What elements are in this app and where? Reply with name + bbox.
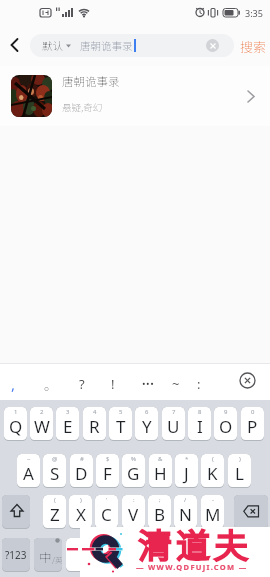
button[interactable]: 唐朝诡事录 — [0, 66, 270, 126]
staticText: $ — [106, 455, 110, 463]
staticText: S — [50, 462, 60, 485]
button[interactable]: ( — [43, 495, 66, 529]
button[interactable]: 。 — [44, 375, 58, 394]
button[interactable]: 8 — [188, 407, 211, 441]
button[interactable]: - — [201, 495, 224, 529]
staticText: @ — [52, 455, 58, 463]
button[interactable]: ! — [111, 375, 115, 393]
button[interactable]: ) — [228, 454, 251, 488]
staticText: 5 — [119, 408, 123, 416]
staticText: B — [154, 503, 166, 526]
staticText: % — [131, 455, 136, 463]
button[interactable]: & — [149, 454, 172, 488]
button[interactable]: 6 — [135, 407, 158, 441]
button[interactable]: 9 — [214, 407, 237, 441]
button[interactable]: 1 — [4, 407, 27, 441]
button[interactable] — [8, 38, 22, 52]
staticText: K — [207, 462, 218, 485]
button[interactable]: 3 — [56, 407, 79, 441]
button[interactable]: 默认 — [30, 34, 234, 57]
button[interactable]: $ — [96, 454, 119, 488]
staticText: 9 — [224, 408, 228, 416]
staticText: ) — [239, 455, 241, 463]
staticText: 3 — [66, 408, 70, 416]
staticText: 默认 — [42, 38, 63, 53]
button[interactable]: / — [174, 495, 197, 529]
button[interactable]: ~ — [172, 375, 180, 393]
button[interactable]: ' — [95, 495, 118, 529]
staticText: 唐朝诡事录 — [80, 38, 133, 53]
staticText: M — [205, 503, 221, 526]
staticText: P — [247, 415, 258, 438]
staticText: X — [76, 503, 86, 526]
staticText: V — [128, 503, 139, 526]
staticText: G — [127, 462, 140, 485]
staticText: Z — [50, 503, 60, 526]
staticText: 清道夫 — [136, 520, 250, 568]
staticText: ?123 — [5, 548, 27, 562]
button[interactable] — [206, 39, 219, 52]
staticText: : — [133, 496, 135, 504]
button[interactable]: ; — [148, 495, 171, 529]
button[interactable]: 5 — [109, 407, 132, 441]
staticText: 清道夫 — [136, 520, 250, 568]
button[interactable]: : — [197, 375, 201, 393]
button[interactable] — [66, 538, 203, 572]
button[interactable]: ?123 — [2, 538, 30, 572]
button[interactable] — [234, 495, 268, 529]
staticText: — WWW.QDFUJI.COM — — [136, 562, 248, 572]
staticText: - — [212, 496, 214, 504]
button[interactable]: : — [122, 495, 145, 529]
button[interactable]: @ — [43, 454, 66, 488]
staticText: U — [167, 415, 180, 438]
button[interactable]: 0 — [241, 407, 264, 441]
staticText: 中 — [39, 547, 52, 565]
staticText: 8 — [198, 408, 202, 416]
staticText: C — [101, 503, 112, 526]
staticText: ( — [212, 455, 214, 463]
staticText: — WWW.QDFUJI.COM — — [136, 562, 248, 572]
staticText: E — [63, 415, 73, 438]
staticText: T — [116, 415, 126, 438]
staticText: * — [185, 455, 189, 463]
staticText: 7 — [172, 408, 176, 416]
staticText: 4 — [93, 408, 97, 416]
button[interactable]: ( — [201, 454, 224, 488]
button[interactable]: 2 — [30, 407, 53, 441]
button[interactable] — [2, 495, 30, 529]
button[interactable]: 7 — [162, 407, 185, 441]
staticText: /英 — [52, 554, 63, 565]
button[interactable]: ••• — [142, 377, 155, 390]
button[interactable]: ~ — [17, 454, 40, 488]
staticText: ( — [54, 496, 56, 504]
staticText: J — [184, 462, 189, 485]
staticText: ~ — [27, 455, 31, 463]
staticText: D — [75, 462, 88, 485]
button[interactable] — [206, 538, 234, 572]
button[interactable]: 搜索 — [240, 37, 267, 56]
staticText: H — [154, 462, 167, 485]
staticText: W — [34, 415, 50, 438]
staticText: 0 — [251, 408, 255, 416]
button[interactable]: , — [11, 374, 16, 394]
button[interactable] — [34, 538, 62, 572]
staticText: / — [184, 496, 187, 504]
staticText: 悬疑,奇幻 — [62, 100, 103, 114]
staticText: & — [158, 455, 163, 463]
button[interactable]: ) — [69, 495, 92, 529]
button[interactable]: ? — [79, 375, 85, 393]
button[interactable]: # — [70, 454, 93, 488]
staticText: 1 — [14, 408, 18, 416]
button[interactable]: % — [122, 454, 145, 488]
staticText: F — [103, 462, 112, 485]
button[interactable]: 4 — [83, 407, 106, 441]
staticText: O — [219, 415, 233, 438]
staticText: 搜索 — [240, 37, 267, 56]
button[interactable]: * — [175, 454, 198, 488]
staticText: Y — [142, 415, 152, 438]
button[interactable] — [238, 538, 269, 572]
staticText: 6 — [145, 408, 149, 416]
button[interactable] — [239, 372, 256, 389]
staticText: L — [235, 462, 244, 485]
staticText: I — [197, 415, 203, 438]
